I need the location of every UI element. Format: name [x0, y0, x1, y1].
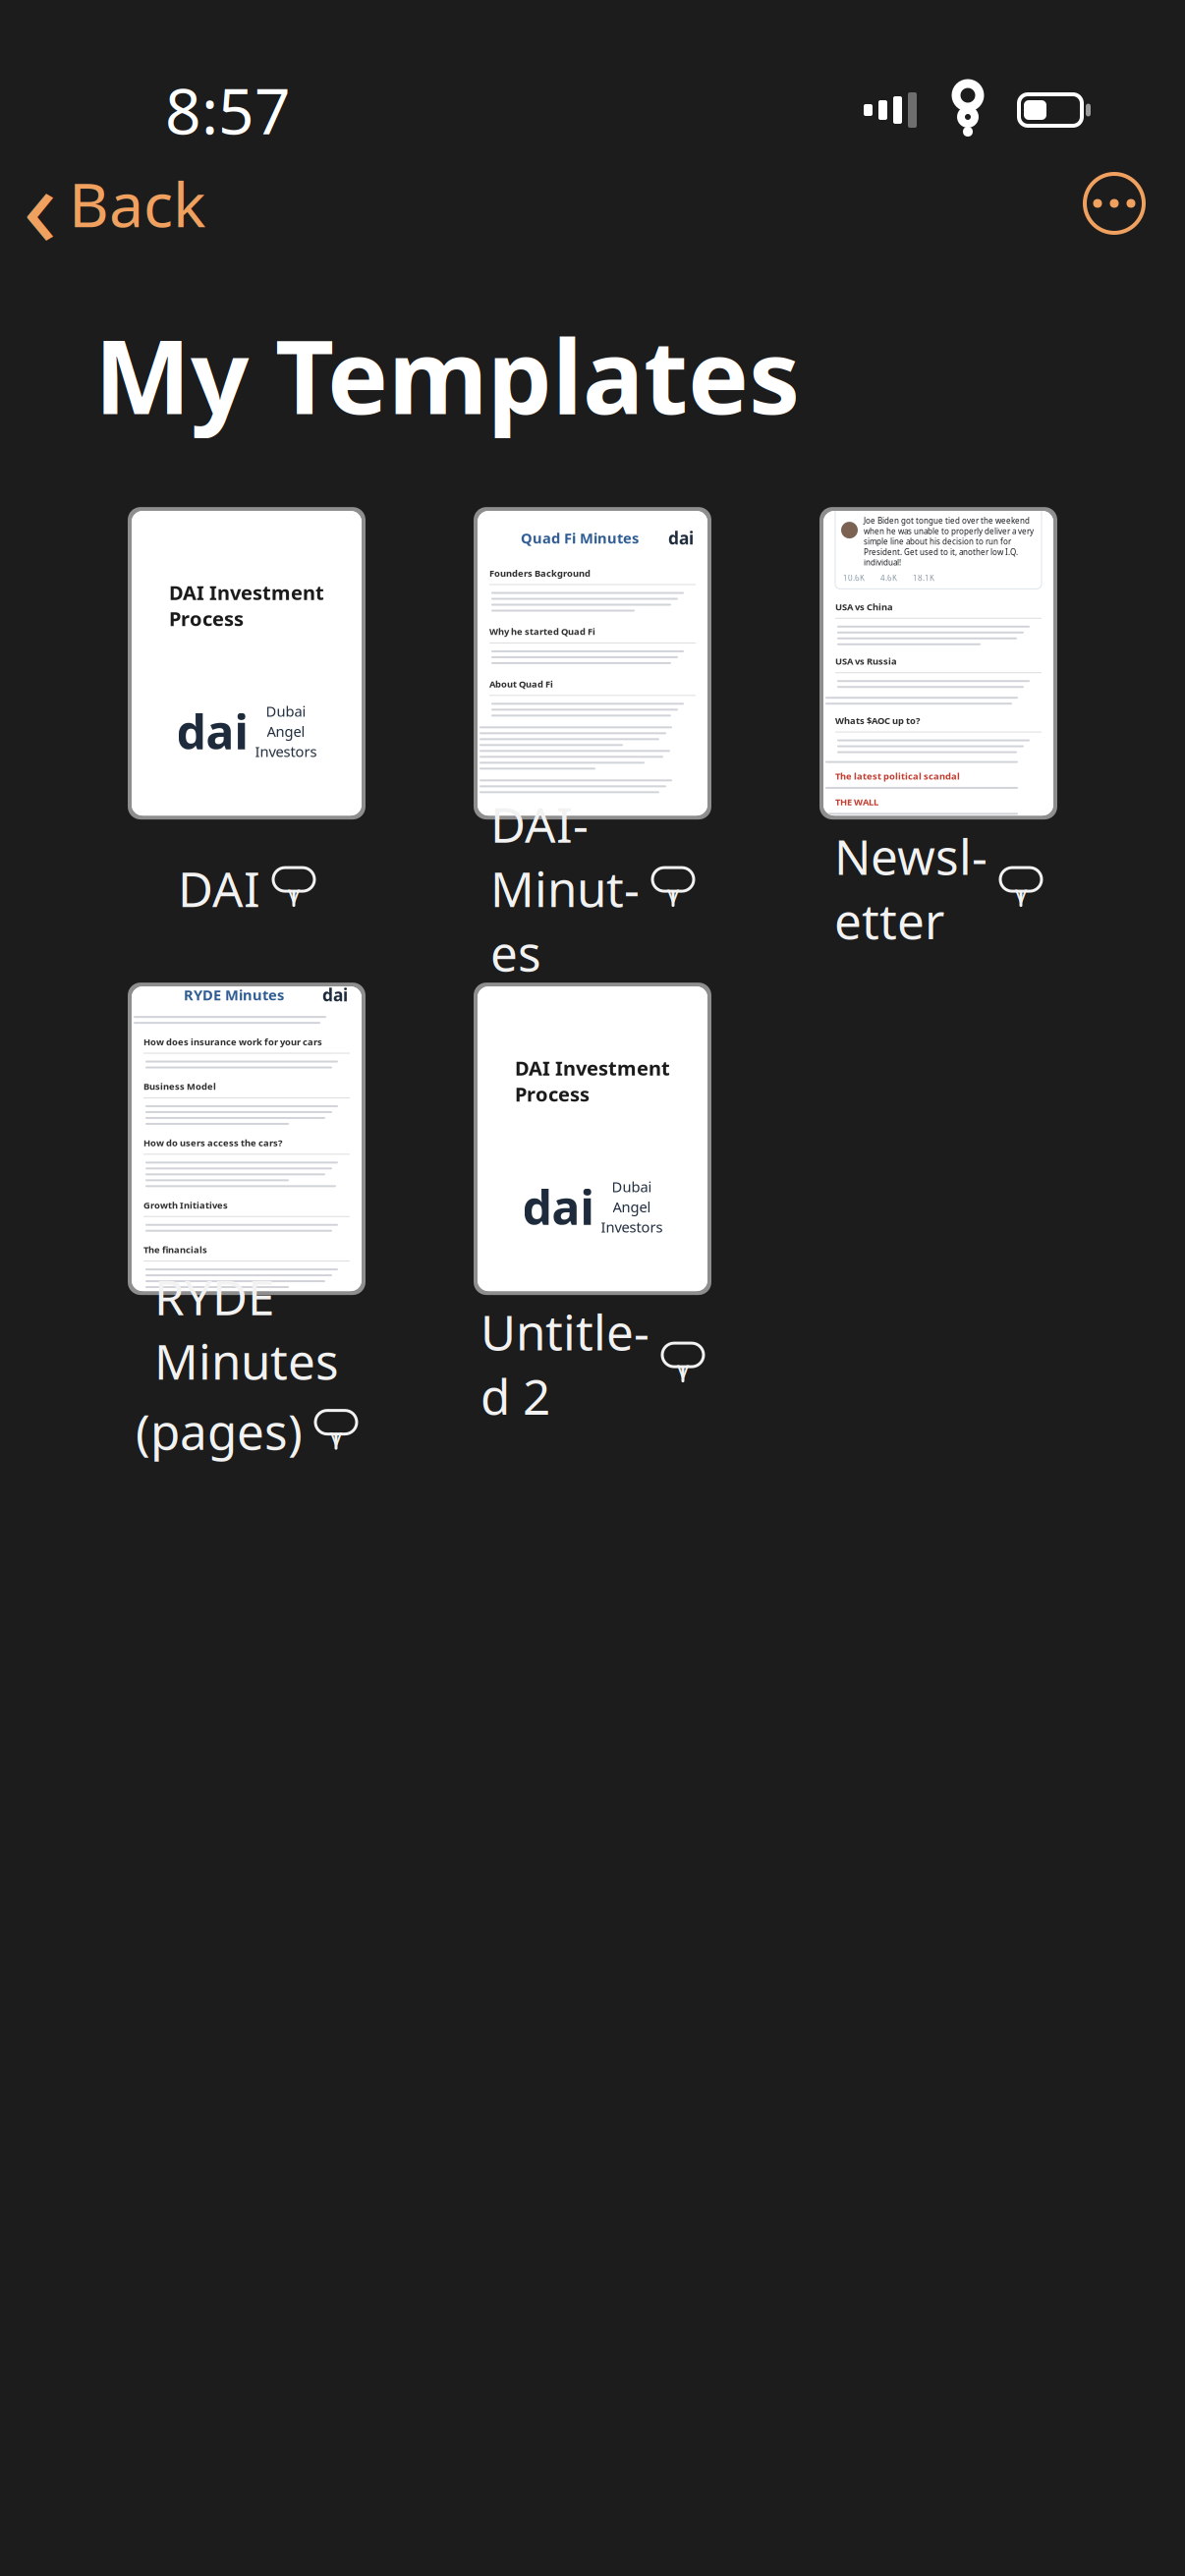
staticText: DAI- Minutes — [490, 792, 640, 985]
staticText: (pages) — [136, 1399, 303, 1463]
staticText: Donald J. Trump — [864, 497, 936, 509]
staticText: ‹ — [23, 129, 58, 278]
staticText: dai — [176, 700, 248, 762]
staticText: dai — [322, 984, 348, 1006]
button[interactable]: ‹ — [0, 145, 225, 262]
button[interactable]: RYDE Minutes — [132, 981, 362, 1411]
staticText: The financials — [143, 1243, 207, 1256]
staticText: Untitled 2 — [480, 1299, 649, 1428]
staticText: About Quad Fi — [489, 678, 553, 690]
staticText: Why he started Quad Fi — [489, 625, 595, 638]
staticText: 8:57 — [165, 68, 291, 152]
staticText: How do users access the cars? — [143, 1137, 282, 1149]
staticText: DAI Investment Process — [515, 1055, 670, 1107]
staticText: Angel — [267, 722, 305, 741]
button[interactable]: DAI Investment Process — [478, 981, 707, 1411]
staticText: Quad Fi Minutes — [521, 528, 639, 548]
button[interactable]: More options — [1065, 154, 1163, 252]
staticText: Investors — [255, 742, 317, 761]
staticText: THE WALL — [835, 796, 878, 808]
staticText: Dubai — [612, 1177, 652, 1196]
staticText: 4.6K — [880, 573, 897, 583]
button[interactable]: DAI Investment Process — [132, 505, 362, 935]
staticText: Whats $AOC up to? — [835, 714, 920, 727]
staticText: dai — [522, 1175, 594, 1238]
staticText: My Templates — [94, 307, 800, 442]
staticText: Angel — [613, 1197, 651, 1216]
staticText: Investors — [601, 1217, 663, 1236]
staticText: RYDE Minutes — [184, 985, 284, 1004]
staticText: Newsletter — [834, 824, 987, 953]
staticText: v — [667, 878, 679, 909]
staticText: USA vs China — [835, 601, 893, 613]
staticText: DAI Investment Process — [169, 579, 324, 632]
staticText: dai — [668, 527, 694, 549]
staticText: USA vs Russia — [835, 655, 897, 667]
staticText: 18.1K — [913, 573, 934, 583]
staticText: How does insurance work for your cars — [143, 1036, 322, 1048]
staticText: Business Model — [143, 1080, 216, 1092]
staticText: v — [288, 878, 300, 909]
button[interactable]: Quad Fi Minutes — [478, 505, 707, 935]
staticText: RYDE Minutes — [154, 1264, 339, 1393]
staticText: Joe Biden got tongue tied over the weeke… — [864, 515, 1034, 568]
staticText: Dubai — [266, 701, 306, 721]
button[interactable]: Trump Tweet of the day — [823, 505, 1053, 935]
staticText: v — [677, 1353, 689, 1384]
staticText: Back — [69, 162, 205, 244]
staticText: v — [1015, 878, 1027, 909]
staticText: v — [330, 1420, 342, 1452]
staticText: The latest political scandal — [835, 770, 960, 782]
staticText: Growth Initiatives — [143, 1199, 228, 1211]
staticText: Founders Background — [489, 567, 591, 579]
staticText: DAI — [178, 856, 260, 920]
staticText: @realDonaldTrump · 21h — [940, 493, 1015, 513]
staticText: 10.6K — [843, 573, 865, 583]
